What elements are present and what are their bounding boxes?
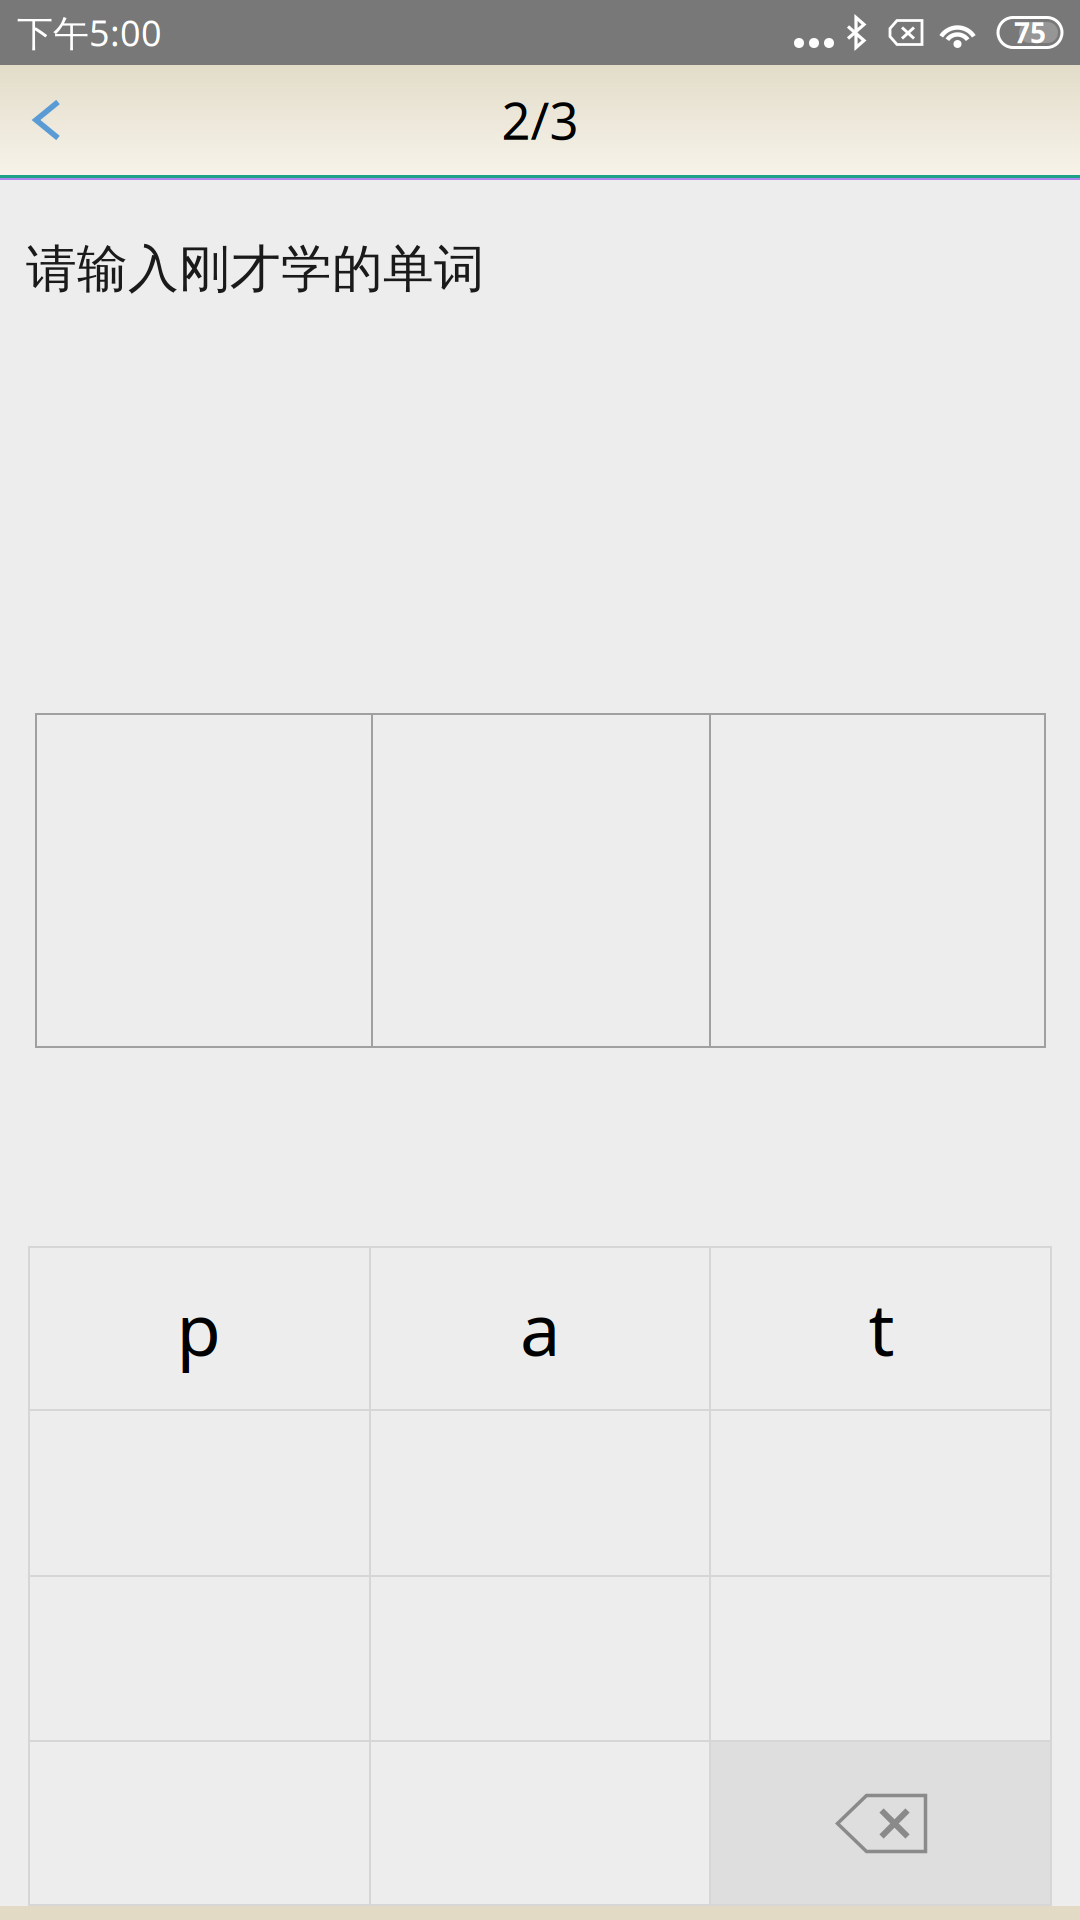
button[interactable]: Back — [0, 65, 100, 175]
button[interactable]: t — [711, 1247, 1052, 1409]
staticText: t — [868, 1280, 894, 1376]
staticText: 2/3 — [501, 86, 578, 154]
staticText: a — [520, 1280, 560, 1376]
staticText: 下午5:00 — [17, 9, 162, 56]
button[interactable]: Delete — [711, 1742, 1052, 1905]
button[interactable]: a — [371, 1247, 709, 1409]
staticText: p — [176, 1280, 220, 1376]
staticText: 75 — [1014, 14, 1046, 51]
staticText: 请输入刚才学的单词 — [26, 238, 485, 300]
button[interactable]: p — [28, 1247, 369, 1409]
